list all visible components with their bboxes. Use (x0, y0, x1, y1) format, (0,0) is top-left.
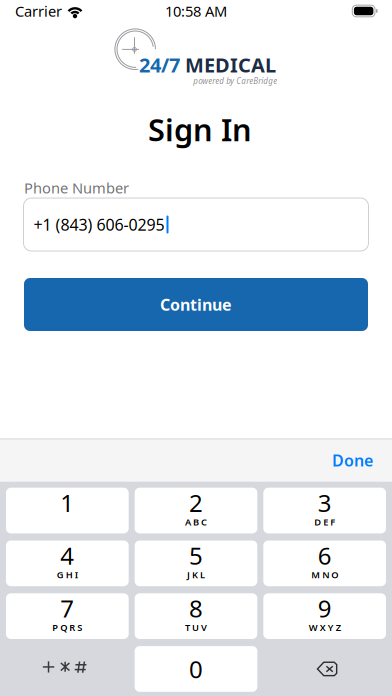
staticText: 24/7 (139, 51, 180, 78)
staticText: 10:58 AM (165, 1, 227, 21)
button[interactable]: Done (318, 440, 387, 481)
button[interactable]: 1 (6, 488, 129, 533)
staticText: D E F (314, 516, 335, 528)
button[interactable]: 6 (263, 540, 386, 586)
staticText: W X Y Z (309, 621, 341, 634)
button[interactable]: 0 (135, 646, 257, 692)
staticText: T U V (185, 621, 207, 634)
button[interactable]: 3 (263, 488, 386, 533)
staticText: G H I (57, 568, 78, 581)
staticText: A B C (185, 516, 207, 528)
staticText: Continue (160, 294, 232, 315)
staticText: 3 (318, 487, 332, 519)
staticText: Done (332, 450, 373, 471)
button[interactable]: Continue (24, 278, 368, 331)
staticText: +1 (843) 606-0295 (33, 214, 164, 235)
staticText: 0 (189, 653, 203, 685)
button[interactable]: Plus star pound (6, 646, 129, 692)
staticText: P Q R S (52, 621, 82, 634)
button[interactable]: Delete (263, 646, 386, 692)
button[interactable]: 2 (135, 488, 257, 533)
staticText: 1 (60, 487, 74, 519)
staticText: 9 (318, 592, 332, 624)
staticText: 2 (189, 487, 203, 519)
staticText: Sign In (148, 109, 252, 150)
staticText: 8 (189, 592, 203, 624)
button[interactable]: 8 (135, 593, 257, 639)
staticText: 5 (189, 539, 203, 571)
staticText: Carrier (15, 1, 62, 21)
staticText: MEDICAL (180, 51, 276, 78)
staticText: 4 (60, 539, 74, 571)
staticText: 7 (60, 592, 74, 624)
staticText: M N O (311, 568, 338, 581)
button[interactable]: 9 (263, 593, 386, 639)
button[interactable]: 4 (6, 540, 129, 586)
staticText: J K L (187, 568, 205, 581)
button[interactable]: 7 (6, 593, 129, 639)
staticText: Phone Number (24, 178, 129, 197)
staticText: powered by CareBridge (193, 76, 277, 86)
staticText: 6 (318, 539, 332, 571)
button[interactable]: 5 (135, 540, 257, 586)
